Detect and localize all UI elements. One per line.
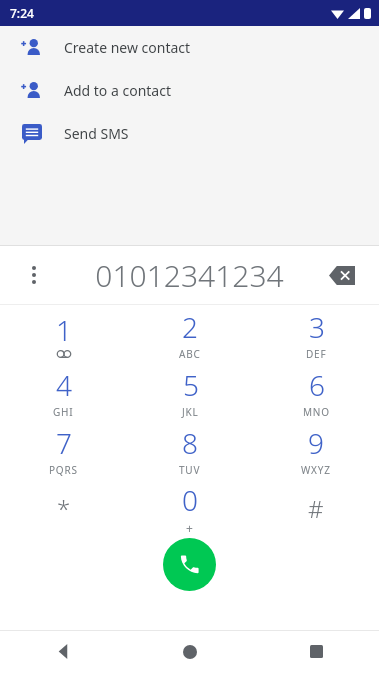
staticText: 9: [308, 424, 324, 462]
button[interactable]: Add to a contact: [0, 69, 379, 112]
button[interactable]: 6: [253, 363, 379, 421]
button[interactable]: 0: [127, 479, 253, 537]
staticText: #: [308, 492, 324, 525]
staticText: 1: [56, 311, 72, 349]
button[interactable]: Send SMS: [0, 112, 379, 155]
staticText: 3: [309, 308, 325, 346]
staticText: Send SMS: [64, 124, 129, 143]
button[interactable]: 4: [0, 363, 127, 421]
staticText: +: [186, 520, 194, 536]
staticText: PQRS: [49, 463, 78, 477]
staticText: Add to a contact: [64, 81, 171, 100]
button[interactable]: 5: [127, 363, 253, 421]
staticText: WXYZ: [301, 463, 331, 477]
staticText: Create new contact: [64, 38, 191, 57]
button[interactable]: Back: [0, 630, 127, 673]
staticText: *: [57, 492, 71, 525]
button[interactable]: Backspace: [325, 258, 359, 292]
staticText: 7:24: [10, 5, 34, 21]
staticText: 0: [182, 481, 198, 519]
button[interactable]: *: [0, 479, 127, 537]
staticText: 01012341234: [95, 255, 284, 296]
staticText: 8: [182, 424, 198, 462]
button[interactable]: Home: [127, 630, 253, 673]
staticText: 2: [182, 308, 198, 346]
button[interactable]: 1: [0, 305, 127, 363]
staticText: MNO: [303, 405, 330, 419]
staticText: ABC: [179, 347, 201, 361]
button[interactable]: 9: [253, 421, 379, 479]
staticText: GHI: [53, 405, 74, 419]
staticText: TUV: [179, 463, 201, 477]
staticText: JKL: [182, 405, 199, 419]
staticText: 6: [309, 366, 325, 404]
button[interactable]: 3: [253, 305, 379, 363]
staticText: DEF: [306, 347, 327, 361]
button[interactable]: #: [253, 479, 379, 537]
button[interactable]: More options: [20, 261, 48, 289]
staticText: 4: [56, 366, 72, 404]
button[interactable]: 8: [127, 421, 253, 479]
button[interactable]: 2: [127, 305, 253, 363]
staticText: 7: [56, 424, 72, 462]
button[interactable]: Create new contact: [0, 26, 379, 69]
button[interactable]: Recent apps: [253, 630, 379, 673]
button[interactable]: 7: [0, 421, 127, 479]
button[interactable]: Call: [163, 538, 216, 591]
staticText: 5: [183, 366, 199, 404]
